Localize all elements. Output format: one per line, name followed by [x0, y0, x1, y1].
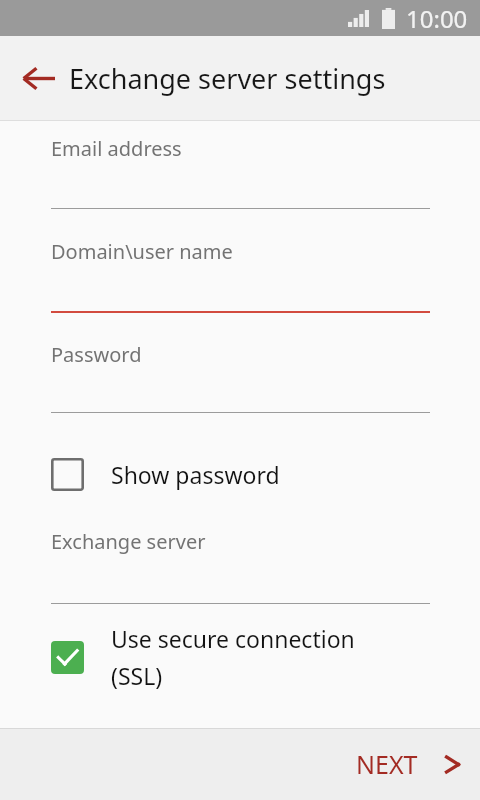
staticText: Show password [111, 459, 280, 490]
staticText: Domain\user name [51, 238, 233, 265]
staticText: Password [51, 341, 142, 368]
staticText: Exchange server [51, 528, 206, 555]
staticText: Email address [51, 135, 182, 162]
staticText: NEXT [356, 747, 418, 781]
staticText: Exchange server settings [69, 60, 386, 97]
button[interactable]: NEXT [326, 728, 480, 800]
staticText: 10:00 [406, 2, 468, 35]
staticText: Use secure connection (SSL) [111, 623, 355, 692]
button[interactable]: Use secure connection (SSL) [0, 620, 480, 694]
button[interactable]: Back [9, 48, 69, 108]
button[interactable]: Show password [0, 446, 480, 502]
